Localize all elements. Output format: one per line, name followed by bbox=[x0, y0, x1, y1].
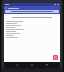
button[interactable]: Recent apps bbox=[45, 63, 49, 67]
button[interactable] bbox=[5, 10, 59, 13]
button[interactable]: Create bbox=[53, 55, 58, 60]
button[interactable]: Navigation menu bbox=[5, 7, 7, 9]
button[interactable]: Home bbox=[30, 63, 34, 67]
button[interactable]: Back bbox=[15, 63, 19, 67]
